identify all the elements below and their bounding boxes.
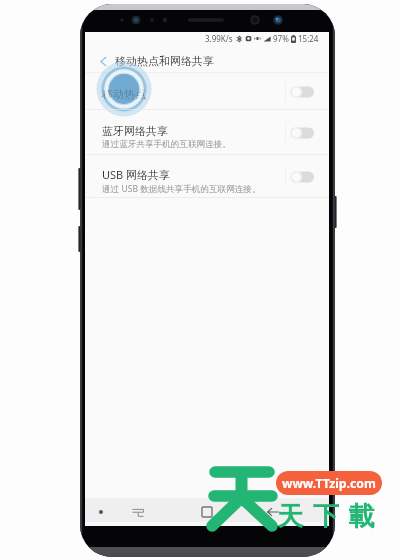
staticText: 15:24 xyxy=(298,33,319,44)
staticText: 蓝牙网络共享 xyxy=(102,124,168,138)
button[interactable]: More options xyxy=(93,504,109,520)
button[interactable]: Back xyxy=(265,504,281,520)
staticText: 通过 USB 数据线共享手机的互联网连接。 xyxy=(102,183,261,195)
staticText: 通过蓝牙共享手机的互联网连接。 xyxy=(102,139,231,150)
button[interactable]: Home xyxy=(199,504,215,520)
button[interactable]: Toggle switch xyxy=(290,127,314,139)
button[interactable]: USB 网络共享 xyxy=(85,155,329,198)
button[interactable]: Toggle switch xyxy=(290,86,314,98)
staticText: 移动热点和网络共享 xyxy=(115,54,214,68)
staticText: 移动热点 xyxy=(102,87,146,101)
staticText: 3.99K/s xyxy=(205,33,233,44)
button[interactable]: 移动热点 xyxy=(85,73,329,110)
button[interactable]: 蓝牙网络共享 xyxy=(85,110,329,155)
staticText: USB 网络共享 xyxy=(102,167,171,182)
button[interactable]: Recent apps xyxy=(130,504,146,520)
staticText: 天下載 xyxy=(277,500,385,533)
staticText: 97% xyxy=(273,33,289,44)
button[interactable]: Back xyxy=(96,54,110,68)
button[interactable]: Toggle switch xyxy=(290,171,314,183)
staticText: www.TTzip.com xyxy=(282,475,376,492)
